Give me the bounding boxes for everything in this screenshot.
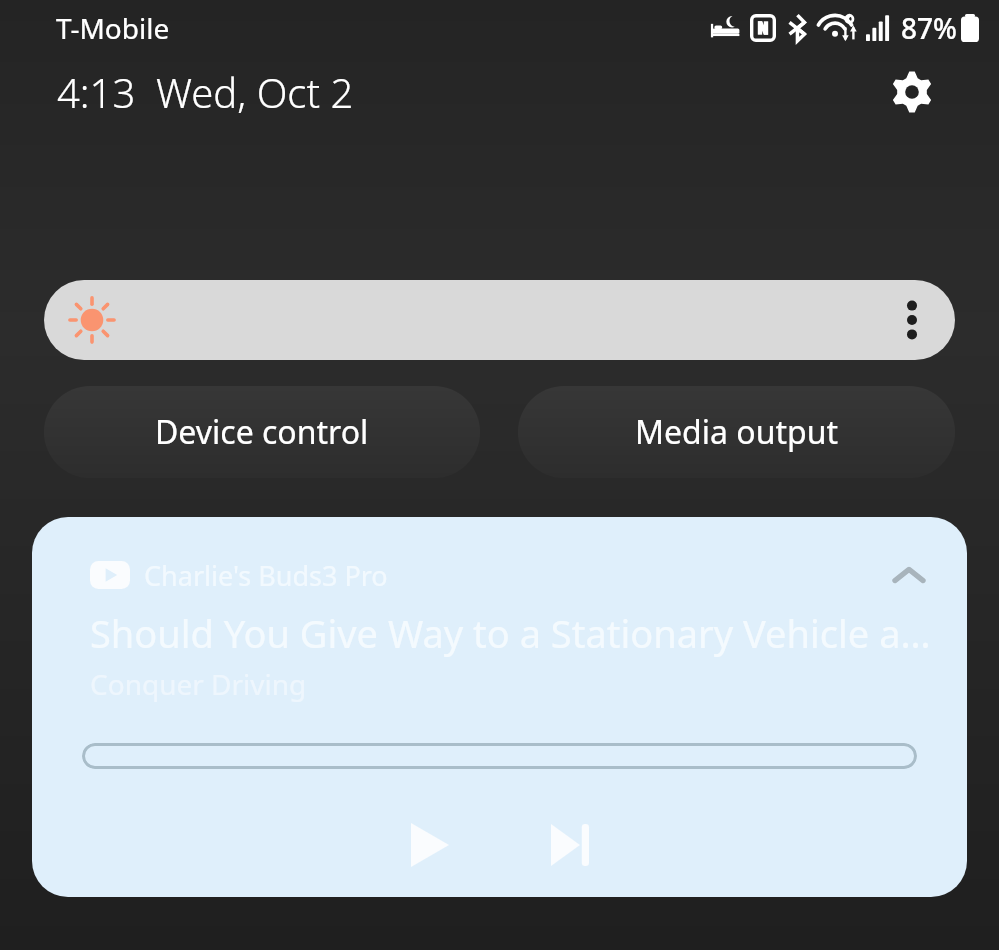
button[interactable]: Brightness [44,280,955,360]
button[interactable]: Next [534,809,606,881]
button[interactable] [82,743,917,769]
staticText: Conquer Driving [90,665,307,703]
staticText: Media output [635,410,838,454]
button[interactable]: Play [394,809,466,881]
staticText: 87% [901,9,957,47]
button[interactable]: Device control [44,386,480,478]
staticText: Device control [155,410,369,454]
button[interactable]: Media output [518,386,955,478]
staticText: Charlie's Buds3 Pro [144,557,388,594]
button[interactable]: Settings [885,65,939,119]
button[interactable]: Collapse [887,553,931,597]
staticText: 4:13 Wed, Oct 2 [57,65,354,119]
button[interactable]: Charlie's Buds3 Pro [32,517,967,897]
staticText: T-Mobile [56,9,170,47]
staticText: Should You Give Way to a Stationary Vehi… [90,607,933,659]
